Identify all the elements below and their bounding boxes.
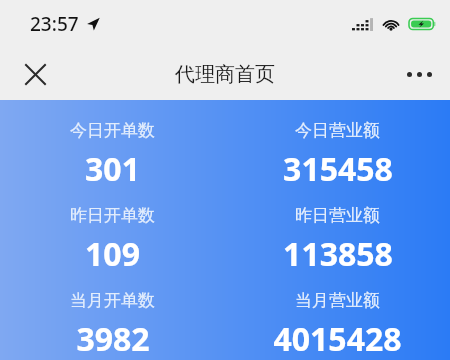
button[interactable]: 今日开单数	[0, 120, 225, 191]
staticText: 23:57	[30, 11, 79, 37]
button[interactable]: 昨日营业额	[225, 205, 450, 276]
button[interactable]: More options	[398, 53, 440, 95]
staticText: 113858	[283, 232, 393, 276]
staticText: 3982	[76, 317, 150, 360]
button[interactable]: 今日营业额	[225, 120, 450, 191]
staticText: 315458	[283, 147, 393, 191]
staticText: 昨日开单数	[70, 205, 155, 226]
staticText: 4015428	[273, 317, 402, 360]
staticText: 当月营业额	[295, 290, 380, 311]
staticText: 昨日营业额	[295, 205, 380, 226]
staticText: 当月开单数	[70, 290, 155, 311]
button[interactable]: 当月营业额	[225, 290, 450, 360]
staticText: 301	[85, 147, 140, 191]
staticText: 109	[85, 232, 140, 276]
button[interactable]: 昨日开单数	[0, 205, 225, 276]
button[interactable]: Close	[14, 53, 56, 95]
staticText: 今日开单数	[70, 120, 155, 141]
staticText: 代理商首页	[175, 62, 275, 87]
button[interactable]: 当月开单数	[0, 290, 225, 360]
staticText: 今日营业额	[295, 120, 380, 141]
